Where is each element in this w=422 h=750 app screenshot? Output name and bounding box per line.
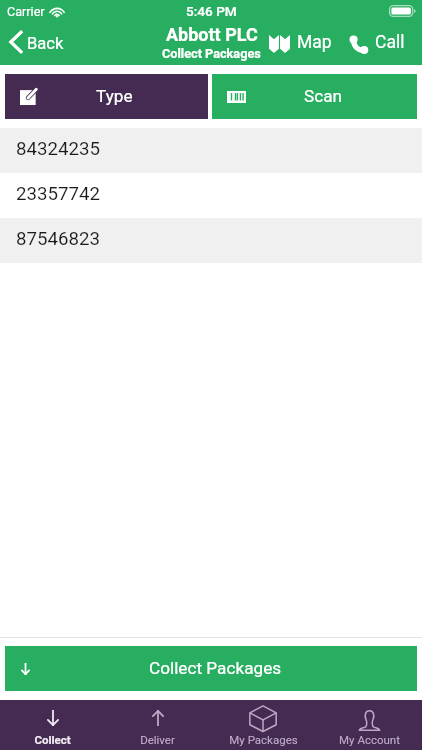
button[interactable]: 23357742 [0,173,422,218]
button[interactable]: My Account [316,700,422,750]
button[interactable]: Call [349,33,405,54]
button[interactable]: Map [269,33,332,54]
staticText: 23357742 [16,183,101,205]
staticText: Deliver [140,733,175,746]
button[interactable]: Deliver [105,700,210,750]
staticText: Call [375,32,405,53]
staticText: Carrier [7,4,45,19]
staticText: Scan [304,86,343,106]
button[interactable]: 87546823 [0,218,422,263]
button[interactable]: My Packages [210,700,316,750]
staticText: Type [96,86,133,106]
button[interactable]: Collect [0,700,105,750]
staticText: Back [27,34,64,53]
staticText: Map [297,32,332,53]
button[interactable]: Type [5,74,208,119]
staticText: 5:46 PM [186,3,237,19]
staticText: Collect Packages [149,658,282,678]
staticText: 87546823 [16,228,101,250]
staticText: My Account [339,733,400,746]
staticText: Collect [34,733,71,746]
button[interactable]: Back [0,33,70,55]
button[interactable]: Collect Packages [5,646,417,691]
staticText: Collect Packages [162,46,261,61]
button[interactable]: Scan [212,74,417,119]
staticText: My Packages [229,733,298,746]
staticText: 84324235 [16,138,101,160]
staticText: Abbott PLC [166,24,258,45]
button[interactable]: 84324235 [0,128,422,173]
